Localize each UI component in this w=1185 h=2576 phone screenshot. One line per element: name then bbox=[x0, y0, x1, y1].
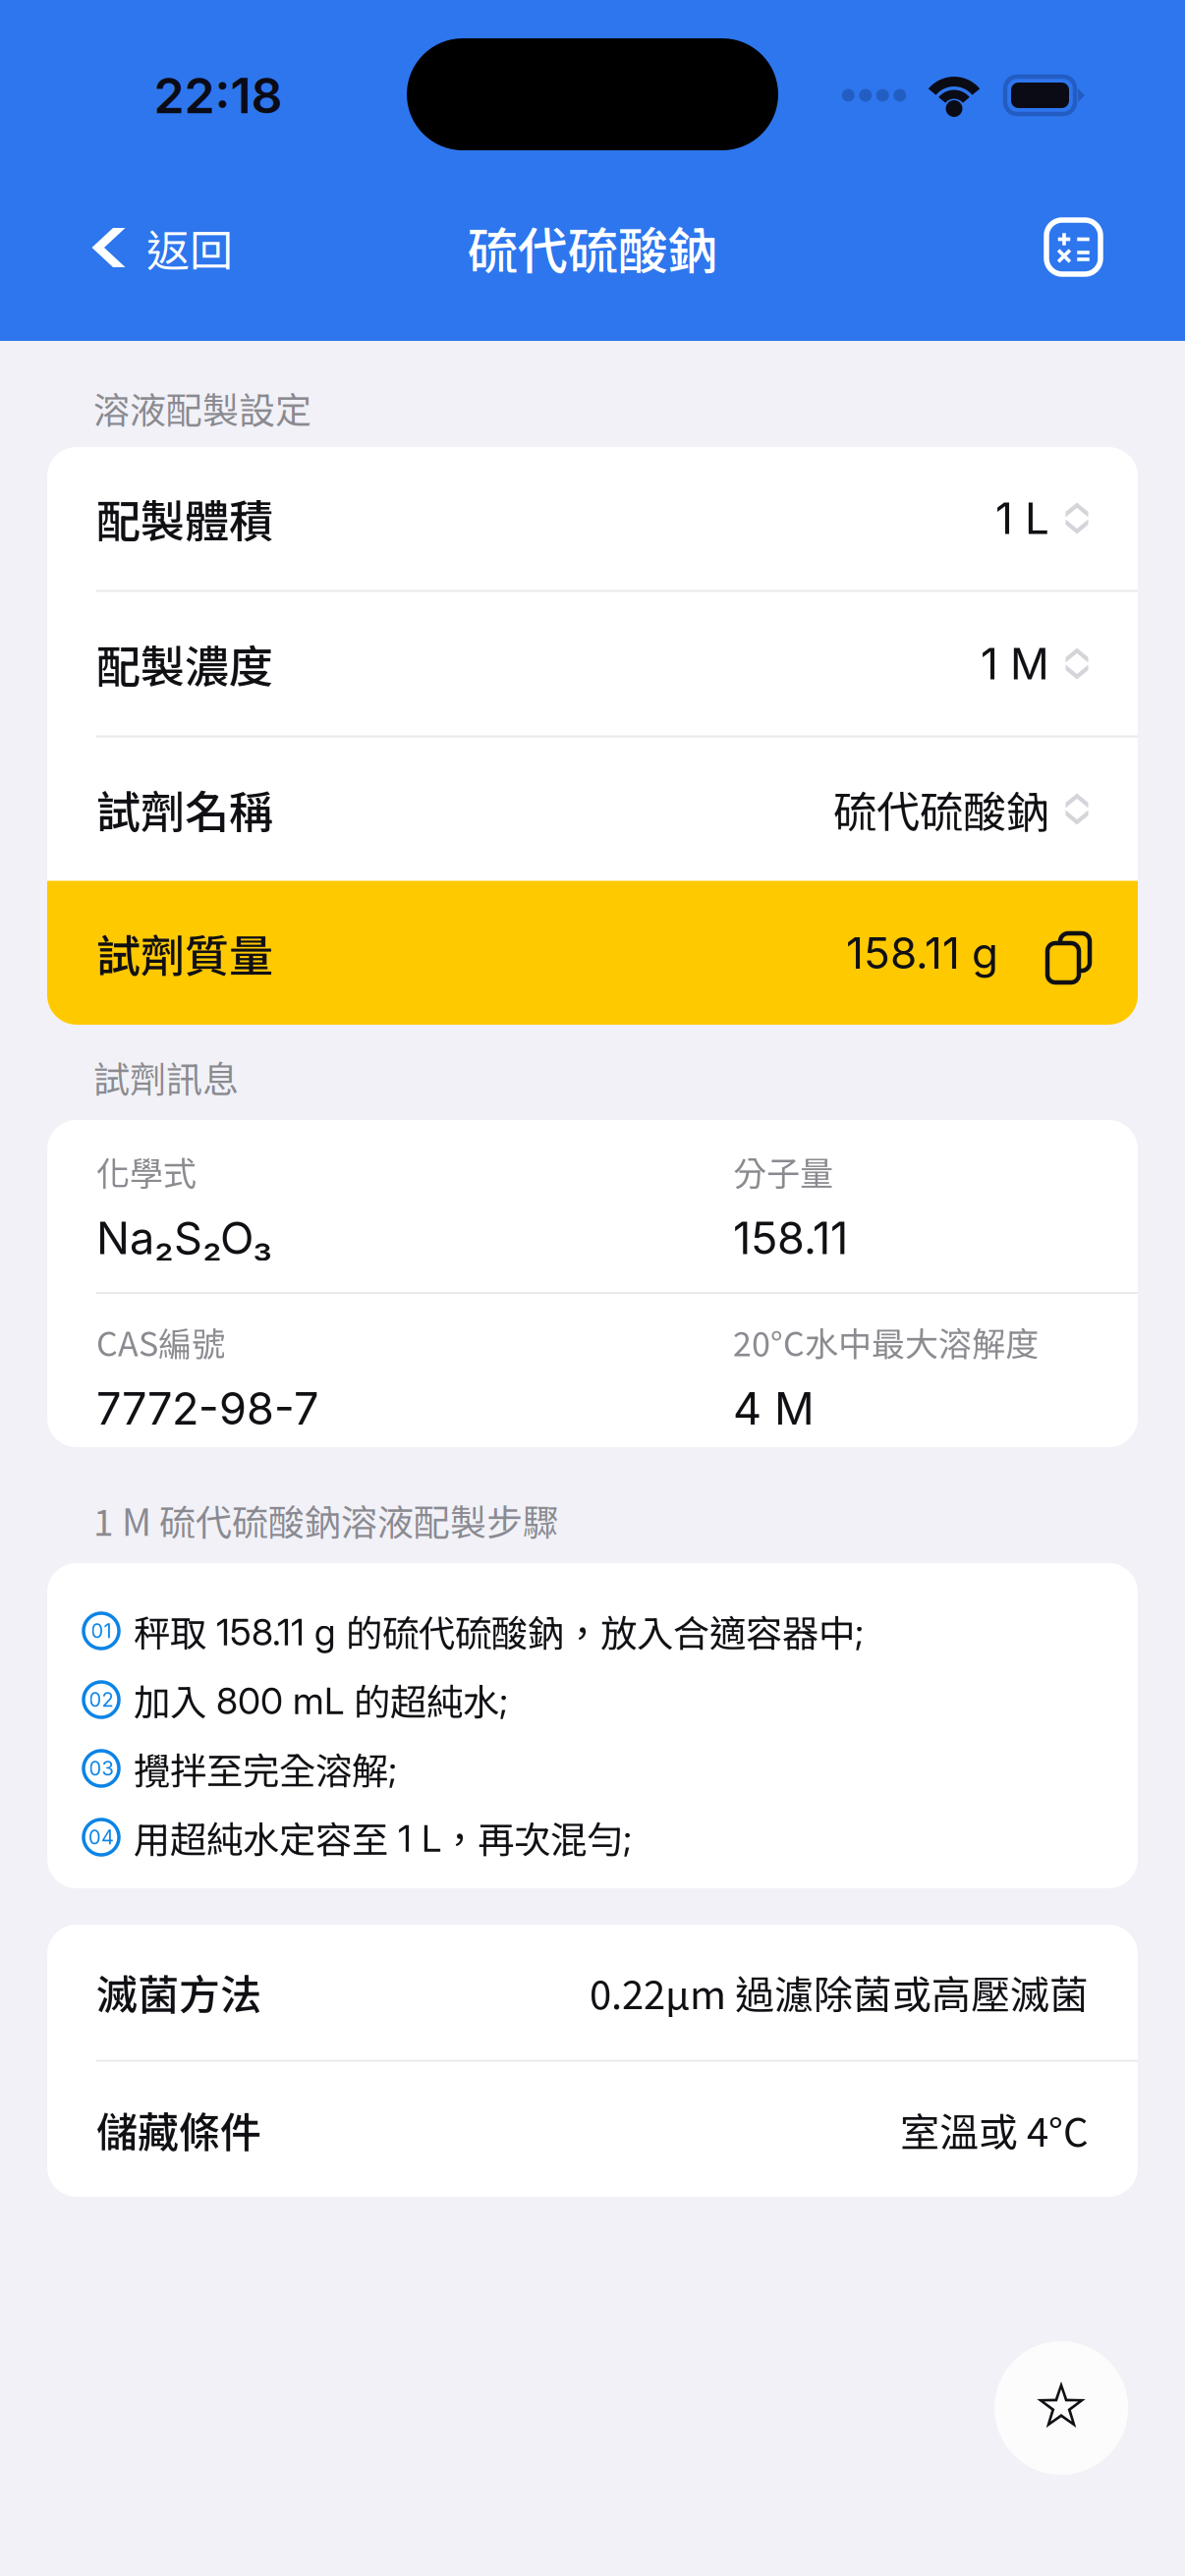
button[interactable]: Calculator bbox=[1046, 220, 1100, 274]
staticText: 158.11 g bbox=[846, 927, 998, 979]
staticText: 20°C水中最大溶解度 bbox=[733, 1318, 1039, 1366]
button[interactable]: Favorite bbox=[994, 2341, 1128, 2475]
staticText: 化學式 bbox=[96, 1147, 197, 1196]
staticText: 1 M 硫代硫酸鈉溶液配製步驟 bbox=[93, 1494, 559, 1546]
staticText: 試劑訊息 bbox=[93, 1050, 239, 1103]
staticText: 04 bbox=[88, 1825, 114, 1849]
staticText: 01 bbox=[91, 1619, 112, 1643]
staticText: 03 bbox=[89, 1757, 113, 1780]
button[interactable]: 返回 bbox=[90, 213, 346, 282]
staticText: 1 L bbox=[995, 492, 1049, 544]
staticText: 配製體積 bbox=[96, 486, 273, 550]
staticText: 返回 bbox=[146, 216, 233, 279]
button[interactable]: 試劑質量 bbox=[47, 881, 1138, 1025]
staticText: 分子量 bbox=[733, 1147, 833, 1196]
staticText: 加入 800 mL 的超純水; bbox=[134, 1674, 508, 1725]
staticText: 4 M bbox=[733, 1382, 815, 1435]
button[interactable]: 配製濃度 bbox=[47, 592, 1138, 735]
button[interactable]: 試劑名稱 bbox=[47, 737, 1138, 881]
staticText: 22:18 bbox=[154, 66, 282, 125]
staticText: 儲藏條件 bbox=[96, 2100, 261, 2159]
staticText: 溶液配製設定 bbox=[93, 381, 311, 434]
staticText: 試劑名稱 bbox=[96, 777, 273, 841]
staticText: Na₂S₂O₃ bbox=[96, 1211, 272, 1265]
staticText: 攪拌至完全溶解; bbox=[134, 1742, 397, 1794]
staticText: 02 bbox=[89, 1688, 113, 1712]
staticText: 硫代硫酸鈉 bbox=[467, 211, 718, 284]
staticText: 硫代硫酸鈉 bbox=[833, 778, 1049, 840]
staticText: 秤取 158.11 g 的硫代硫酸鈉，放入合適容器中; bbox=[134, 1605, 864, 1657]
staticText: 用超純水定容至 1 L，再次混勻; bbox=[134, 1811, 632, 1863]
staticText: 配製濃度 bbox=[96, 632, 273, 696]
staticText: CAS編號 bbox=[96, 1318, 225, 1366]
staticText: 滅菌方法 bbox=[96, 1962, 261, 2022]
staticText: 7772-98-7 bbox=[96, 1382, 318, 1435]
button[interactable]: 配製體積 bbox=[47, 447, 1138, 590]
staticText: 0.22μm 過濾除菌或高壓滅菌 bbox=[590, 1963, 1089, 2020]
staticText: 1 M bbox=[981, 638, 1049, 690]
staticText: 158.11 bbox=[733, 1211, 848, 1265]
staticText: 室溫或 4°C bbox=[900, 2101, 1089, 2158]
staticText: 試劑質量 bbox=[96, 921, 273, 985]
